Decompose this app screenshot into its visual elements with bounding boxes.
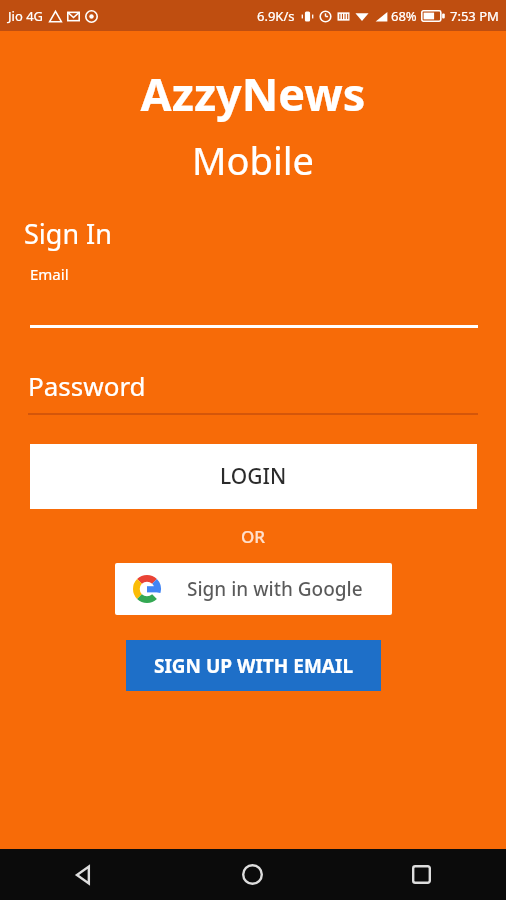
- staticText: 6.9K/s: [257, 7, 295, 25]
- staticText: 7:53 PM: [450, 7, 499, 25]
- staticText: SIGN UP WITH EMAIL: [154, 653, 354, 679]
- staticText: Sign in with Google: [187, 576, 363, 602]
- staticText: Password: [28, 368, 146, 403]
- button[interactable]: Back: [0, 849, 168, 900]
- button[interactable]: Home: [168, 849, 337, 900]
- staticText: Jio 4G: [8, 7, 44, 25]
- staticText: Sign In: [24, 215, 112, 252]
- button[interactable]: SIGN UP WITH EMAIL: [126, 640, 381, 691]
- staticText: Email: [30, 264, 69, 284]
- staticText: LOGIN: [220, 462, 287, 491]
- button[interactable]: Recent apps: [337, 849, 506, 900]
- staticText: 68%: [391, 7, 417, 25]
- staticText: Mobile: [0, 134, 506, 186]
- button[interactable]: LOGIN: [30, 444, 477, 509]
- staticText: OR: [0, 525, 506, 548]
- button[interactable]: Sign in with Google: [115, 563, 392, 615]
- staticText: AzzyNews: [0, 63, 506, 124]
